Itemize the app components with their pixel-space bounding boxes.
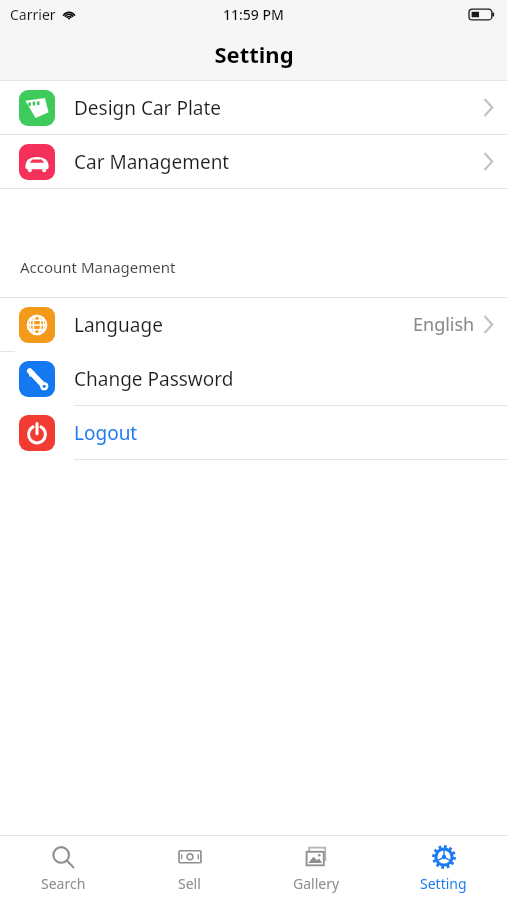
button[interactable]: Setting <box>380 836 507 900</box>
staticText: Setting <box>214 39 294 69</box>
button[interactable]: Design Car Plate <box>0 81 507 134</box>
staticText: Carrier <box>10 5 56 24</box>
button[interactable]: Gallery <box>253 836 380 900</box>
button[interactable]: Sell <box>126 836 253 900</box>
staticText: English <box>413 312 475 337</box>
button[interactable]: Search <box>0 836 126 900</box>
staticText: Design Car Plate <box>74 95 222 121</box>
staticText: Language <box>74 312 163 338</box>
button[interactable]: Logout <box>0 406 507 459</box>
staticText: Car Management <box>74 149 230 175</box>
staticText: 11:59 PM <box>223 5 284 24</box>
button[interactable]: Car Management <box>0 135 507 188</box>
button[interactable]: Language <box>0 298 507 351</box>
staticText: Gallery <box>293 874 340 893</box>
staticText: Sell <box>178 874 201 893</box>
button[interactable]: Change Password <box>0 352 507 405</box>
staticText: Change Password <box>74 366 234 392</box>
staticText: Setting <box>420 874 467 893</box>
staticText: Search <box>41 874 86 893</box>
staticText: Account Management <box>20 257 176 277</box>
staticText: Logout <box>74 420 138 446</box>
